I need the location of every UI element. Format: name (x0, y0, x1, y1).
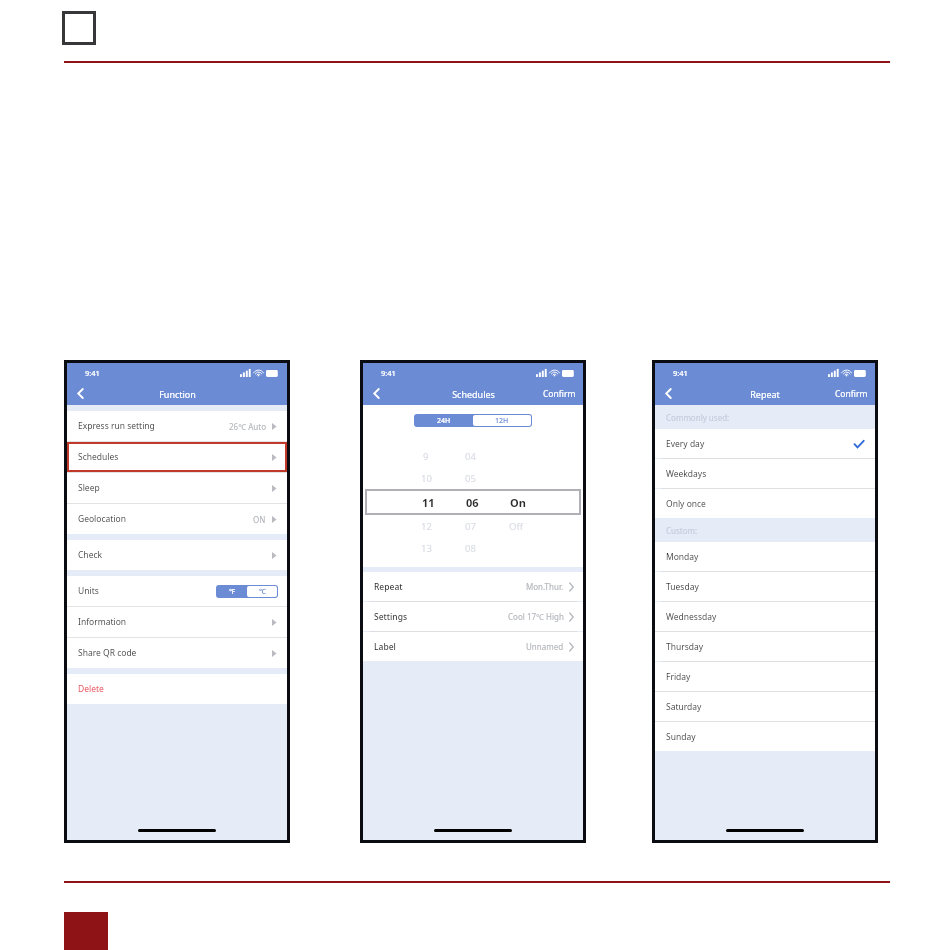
staticText: 9:41 (85, 368, 100, 378)
staticText: Schedules (78, 451, 119, 463)
button[interactable]: Friday (655, 662, 875, 691)
button[interactable]: Settings (363, 602, 583, 631)
button[interactable]: Schedules (67, 442, 287, 472)
button[interactable]: Back (655, 382, 681, 405)
staticText: ℉ (229, 587, 236, 597)
staticText: Unnamed (526, 641, 564, 652)
staticText: Check (78, 549, 103, 561)
button[interactable]: Check (67, 540, 287, 570)
button[interactable]: ℉ (216, 585, 278, 598)
button[interactable]: Back (363, 382, 389, 405)
staticText: Units (78, 585, 99, 597)
staticText: 12 (421, 520, 432, 533)
staticText: Confirm (835, 388, 868, 400)
staticText: On (510, 495, 526, 510)
staticText: Geolocation (78, 513, 126, 525)
staticText: 04 (465, 450, 476, 463)
staticText: ℃ (259, 587, 266, 597)
button[interactable]: Express run setting (67, 411, 287, 441)
staticText: Delete (78, 683, 104, 695)
staticText: 12H (495, 416, 509, 426)
staticText: Saturday (666, 701, 702, 713)
staticText: 08 (465, 542, 476, 555)
staticText: Express run setting (78, 420, 155, 432)
staticText: Confirm (543, 388, 576, 400)
staticText: Schedules (452, 388, 495, 400)
staticText: Off (509, 520, 523, 533)
button[interactable]: Wednessday (655, 602, 875, 631)
staticText: 11 (422, 495, 435, 510)
button[interactable]: Sleep (67, 473, 287, 503)
staticText: Cool 17℃ High (508, 611, 564, 622)
button[interactable]: Label (363, 632, 583, 661)
button[interactable]: Repeat (363, 572, 583, 601)
staticText: Information (78, 616, 127, 628)
staticText: 24H (437, 416, 451, 426)
staticText: Repeat (374, 581, 403, 593)
staticText: Custom: (666, 525, 698, 536)
staticText: Friday (666, 671, 691, 683)
staticText: Thursday (666, 641, 704, 653)
button[interactable]: Delete (67, 674, 287, 704)
button[interactable]: Saturday (655, 692, 875, 721)
staticText: 9:41 (673, 368, 688, 378)
staticText: Commonly used: (666, 412, 730, 423)
staticText: 9 (423, 450, 429, 463)
staticText: 26℃ Auto (229, 421, 266, 432)
button[interactable]: Units (67, 576, 287, 606)
staticText: Only once (666, 498, 706, 510)
staticText: Every day (666, 438, 705, 450)
button[interactable]: Monday (655, 542, 875, 571)
staticText: 05 (465, 472, 476, 485)
staticText: Sunday (666, 731, 696, 743)
button[interactable]: Tuesday (655, 572, 875, 601)
staticText: Function (159, 388, 196, 400)
button[interactable]: Thursday (655, 632, 875, 661)
button[interactable]: 24H (414, 414, 532, 427)
staticText: 13 (421, 542, 432, 555)
staticText: Mon.Thur. (526, 581, 564, 592)
staticText: Tuesday (666, 581, 699, 593)
staticText: 10 (421, 472, 432, 485)
button[interactable]: Sunday (655, 722, 875, 751)
button[interactable]: Every day (655, 429, 875, 458)
staticText: Share QR code (78, 647, 137, 659)
staticText: ON (253, 514, 266, 525)
button[interactable]: Weekdays (655, 459, 875, 488)
staticText: Wednessday (666, 611, 717, 623)
staticText: Settings (374, 611, 408, 623)
staticText: 9:41 (381, 368, 396, 378)
button[interactable]: Information (67, 607, 287, 637)
button[interactable]: Share QR code (67, 638, 287, 668)
button[interactable]: Back (67, 382, 93, 405)
button[interactable]: Only once (655, 489, 875, 518)
staticText: 07 (465, 520, 476, 533)
button[interactable]: Geolocation (67, 504, 287, 534)
staticText: Sleep (78, 482, 100, 494)
staticText: Label (374, 641, 396, 653)
button[interactable]: Confirm (536, 382, 583, 405)
staticText: Monday (666, 551, 699, 563)
staticText: 06 (466, 495, 479, 510)
staticText: Repeat (750, 388, 780, 400)
button[interactable]: Confirm (828, 382, 875, 405)
staticText: Weekdays (666, 468, 707, 480)
